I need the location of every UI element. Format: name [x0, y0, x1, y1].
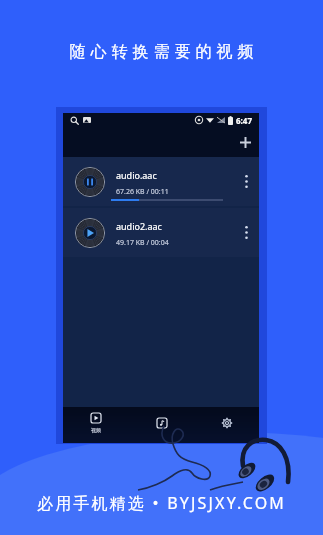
staticText: 6:47 — [236, 115, 252, 126]
staticText: 视频 — [91, 427, 101, 433]
staticText: audio.aac — [116, 169, 157, 181]
button[interactable]: More options — [237, 208, 255, 257]
button[interactable]: Video — [63, 407, 129, 443]
staticText: 67.26 KB / 00:11 — [116, 187, 169, 197]
button[interactable]: Settings — [194, 407, 259, 443]
button[interactable]: More options — [237, 157, 255, 206]
staticText: 随心转换需要的视频 — [67, 42, 256, 62]
staticText: 必用手机精选 • BYJSJXY.COM — [37, 492, 287, 514]
button[interactable]: audio2.aac — [63, 208, 259, 257]
button[interactable]: Add — [231, 128, 259, 156]
staticText: 49.17 KB / 00:04 — [116, 238, 169, 248]
button[interactable]: audio.aac — [63, 157, 259, 206]
staticText: audio2.aac — [116, 220, 162, 232]
button[interactable]: Audio — [129, 407, 194, 443]
